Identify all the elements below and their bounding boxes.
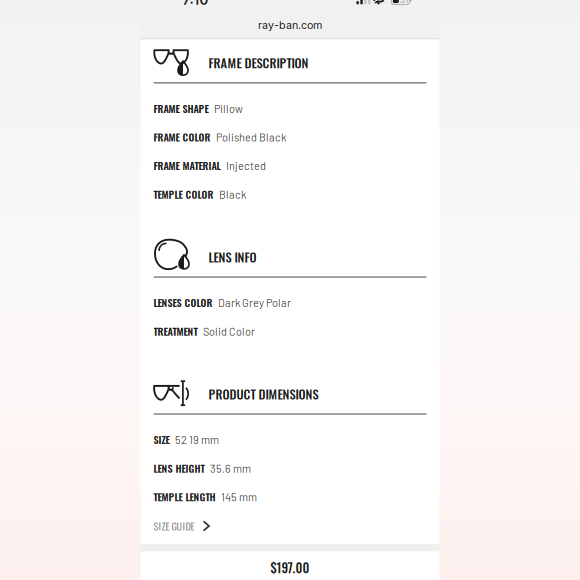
staticText: Solid Color	[203, 325, 255, 338]
staticText: TEMPLE COLOR	[153, 187, 213, 202]
staticText: Black	[219, 188, 246, 201]
staticText: LENS HEIGHT	[153, 461, 204, 476]
button[interactable]: SIZE GUIDE	[153, 511, 427, 541]
staticText: Injected	[226, 159, 266, 172]
staticText: FRAME DESCRIPTION	[208, 53, 308, 72]
staticText: ray-ban.com	[258, 18, 322, 31]
staticText: TREATMENT	[153, 324, 197, 339]
staticText: 145 mm	[221, 490, 257, 503]
staticText: SIZE GUIDE	[153, 518, 194, 533]
staticText: Polished Black	[216, 130, 286, 144]
staticText: 7:10	[182, 0, 208, 8]
staticText: LENSES COLOR	[153, 295, 212, 310]
staticText: FRAME COLOR	[153, 129, 210, 144]
staticText: FRAME SHAPE	[153, 101, 208, 116]
staticText: 52 19 mm	[175, 433, 219, 446]
staticText: Pillow	[214, 102, 243, 115]
staticText: $197.00	[270, 558, 309, 577]
staticText: TEMPLE LENGTH	[153, 489, 215, 504]
staticText: FRAME MATERIAL	[153, 158, 220, 173]
staticText: 35.6 mm	[210, 462, 251, 475]
staticText: Dark Grey Polar	[218, 296, 291, 309]
staticText: PRODUCT DIMENSIONS	[208, 385, 318, 403]
staticText: 31	[400, 0, 408, 5]
staticText: LENS INFO	[208, 248, 256, 266]
staticText: SIZE	[153, 432, 169, 447]
